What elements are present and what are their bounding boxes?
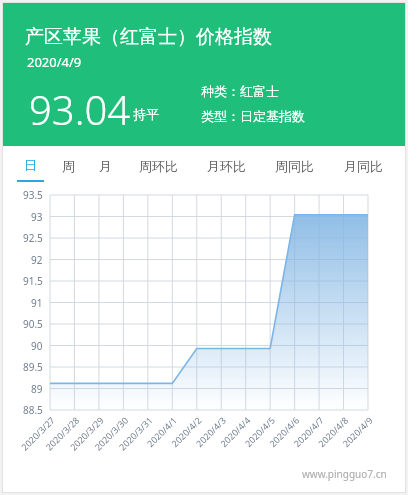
staticText: 种类：红富士 (201, 83, 279, 99)
staticText: 日 (24, 157, 37, 173)
button[interactable]: 周同比 (260, 146, 328, 184)
staticText: 周 (62, 158, 75, 174)
button[interactable]: 日 (11, 146, 49, 184)
staticText: 类型：日定基指数 (201, 108, 305, 124)
staticText: 2020/4/9 (27, 53, 82, 71)
staticText: 持平 (133, 106, 159, 122)
staticText: 月同比 (344, 158, 383, 174)
staticText: 月环比 (207, 158, 246, 174)
button[interactable]: 月环比 (192, 146, 260, 184)
staticText: 周同比 (275, 158, 314, 174)
button[interactable]: 月同比 (328, 146, 399, 184)
staticText: 93.04 (29, 82, 131, 136)
staticText: 产区苹果（红富士）价格指数 (25, 25, 272, 49)
button[interactable]: 月 (87, 146, 124, 184)
button[interactable]: 周 (49, 146, 87, 184)
staticText: 周环比 (139, 158, 178, 174)
staticText: 月 (99, 158, 112, 174)
button[interactable]: 周环比 (124, 146, 192, 184)
